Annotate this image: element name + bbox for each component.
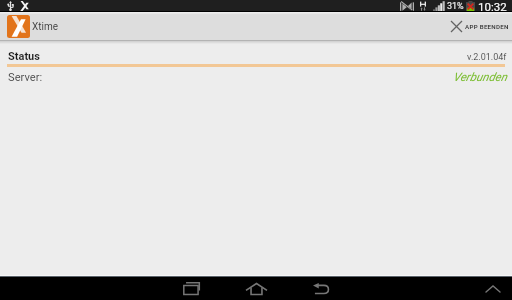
button[interactable]: Recents [168, 277, 214, 300]
staticText: APP BEENDEN [465, 23, 509, 30]
staticText: Verbunden [453, 70, 507, 84]
staticText: 10:32 [478, 0, 507, 12]
staticText: Server: [8, 71, 43, 84]
staticText: Xtime [32, 21, 59, 33]
staticText: Status [8, 50, 40, 63]
staticText: v.2.01.04f [467, 52, 507, 63]
button[interactable]: Xtime [7, 15, 59, 38]
button[interactable]: APP BEENDEN [443, 12, 512, 41]
button[interactable]: Status [0, 50, 512, 67]
staticText: 31% [447, 1, 464, 12]
button[interactable]: Back [298, 277, 344, 300]
button[interactable]: Show menu [474, 277, 512, 300]
button[interactable]: Server: [8, 67, 507, 87]
button[interactable]: Home [233, 277, 279, 300]
